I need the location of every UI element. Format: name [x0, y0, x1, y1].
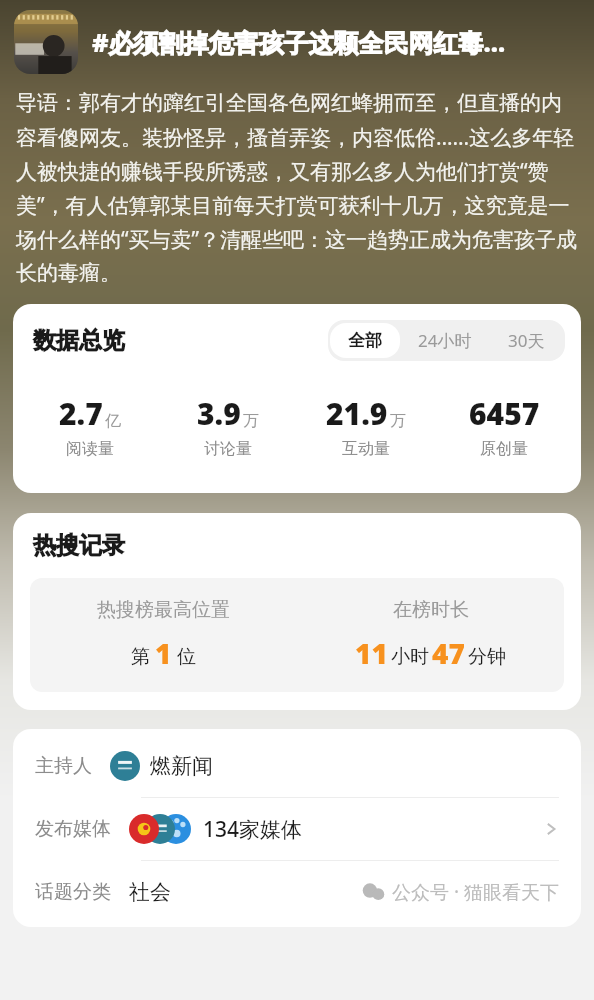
- staticText: 位: [177, 645, 196, 669]
- button[interactable]: 发布媒体: [13, 798, 581, 860]
- staticText: 互动量: [342, 439, 390, 459]
- staticText: 1: [155, 634, 172, 672]
- staticText: 21.9: [326, 393, 388, 434]
- staticText: 数据总览: [33, 326, 125, 355]
- button[interactable]: 30天: [490, 322, 563, 359]
- staticText: 原创量: [480, 439, 528, 459]
- staticText: 导语：郭有才的蹿红引全国各色网红蜂拥而至，但直播的内容看傻网友。装扮怪异，搔首弄…: [16, 90, 578, 286]
- staticText: 阅读量: [66, 439, 114, 459]
- staticText: 社会: [129, 879, 171, 905]
- button[interactable]: 话题分类: [13, 861, 581, 923]
- staticText: 主持人: [35, 754, 92, 778]
- staticText: #必须割掉危害孩子这颗全民网红毒…: [92, 25, 506, 59]
- staticText: 小时: [391, 645, 429, 669]
- staticText: 在榜时长: [393, 598, 469, 622]
- staticText: 讨论量: [204, 439, 252, 459]
- button[interactable]: #必须割掉危害孩子这颗全民网红毒…: [14, 10, 582, 74]
- staticText: 发布媒体: [35, 817, 111, 841]
- staticText: 话题分类: [35, 880, 111, 904]
- staticText: 134家媒体: [203, 815, 303, 844]
- staticText: 24小时: [418, 329, 472, 352]
- button[interactable]: 主持人: [13, 735, 581, 797]
- other: More media: [543, 821, 559, 837]
- staticText: 亿: [105, 411, 121, 431]
- staticText: 47: [432, 634, 465, 672]
- staticText: 热搜记录: [33, 531, 125, 560]
- staticText: 第: [131, 645, 150, 669]
- staticText: 万: [390, 411, 406, 431]
- staticText: 万: [243, 411, 259, 431]
- staticText: 全部: [348, 330, 382, 351]
- staticText: 2.7: [59, 393, 103, 434]
- staticText: 分钟: [468, 645, 506, 669]
- staticText: 燃新闻: [150, 753, 213, 779]
- staticText: 11: [355, 634, 388, 672]
- button[interactable]: 全部: [330, 323, 400, 358]
- staticText: 热搜榜最高位置: [97, 598, 230, 622]
- staticText: 3.9: [197, 393, 241, 434]
- staticText: 30天: [508, 329, 545, 352]
- staticText: 6457: [469, 393, 540, 434]
- staticText: 公众号 · 猫眼看天下: [392, 879, 559, 905]
- button[interactable]: 24小时: [400, 322, 490, 359]
